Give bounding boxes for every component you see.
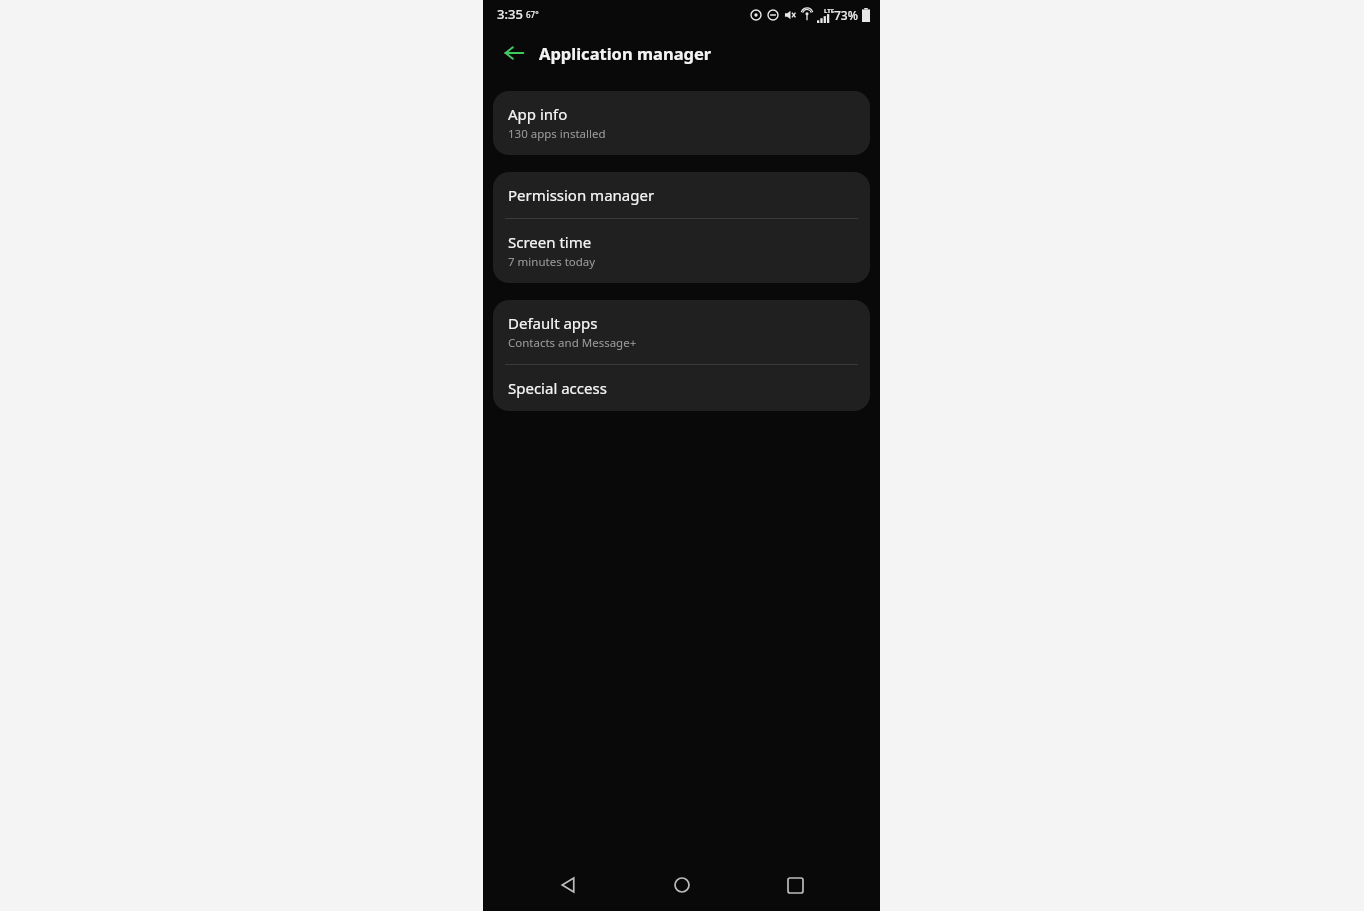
staticText: Default apps [508,313,598,333]
button[interactable]: Permission manager [493,172,870,218]
staticText: 130 apps installed [508,126,606,142]
button[interactable]: Screen time [493,219,870,283]
button[interactable]: Default apps [493,300,870,364]
staticText: LTE [824,7,835,15]
staticText: Application manager [539,42,712,64]
staticText: Contacts and Message+ [508,335,637,351]
staticText: 73% [834,7,858,23]
button[interactable]: Special access [493,365,870,411]
staticText: Permission manager [508,185,655,205]
staticText: Special access [508,378,607,398]
button[interactable]: Recent apps [767,859,823,911]
staticText: Screen time [508,232,592,252]
button[interactable]: Back [497,36,531,70]
button[interactable]: Back [540,859,596,911]
staticText: 7 minutes today [508,254,596,270]
staticText: App info [508,104,568,124]
staticText: 3:35 [497,5,523,23]
staticText: 67° [526,9,539,20]
button[interactable]: App info [493,91,870,155]
button[interactable]: Home [654,859,710,911]
